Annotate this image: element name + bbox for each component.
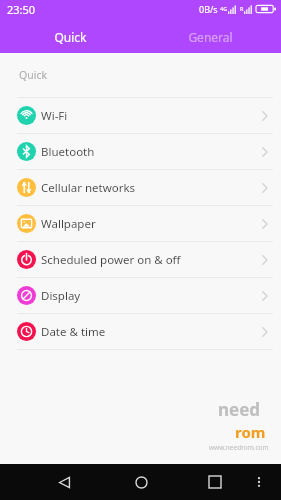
staticText: Date & time <box>41 324 106 340</box>
staticText: Cellular networks <box>41 180 136 196</box>
staticText: Quick <box>19 68 48 82</box>
button[interactable]: Cellular networks <box>0 170 281 205</box>
staticText: Display <box>41 288 81 304</box>
staticText: Wi-Fi <box>41 108 68 124</box>
staticText: www.needrom.com <box>209 443 269 452</box>
staticText: rom <box>235 422 266 442</box>
staticText: Wallpaper <box>41 216 96 232</box>
button[interactable]: Quick <box>0 20 140 53</box>
button[interactable]: General <box>140 20 281 53</box>
staticText: 0B/s <box>199 3 218 15</box>
button[interactable]: Recent apps <box>203 470 227 494</box>
button[interactable]: Date & time <box>0 314 281 349</box>
staticText: Quick <box>54 29 87 45</box>
button[interactable]: Wallpaper <box>0 206 281 241</box>
button[interactable]: Scheduled power on & off <box>0 242 281 277</box>
button[interactable]: Bluetooth <box>0 134 281 169</box>
staticText: R <box>240 5 244 12</box>
staticText: Scheduled power on & off <box>41 252 181 268</box>
staticText: 23:50 <box>7 2 36 17</box>
button[interactable]: Back <box>52 470 76 494</box>
staticText: need <box>218 398 261 421</box>
button[interactable]: Display <box>0 278 281 313</box>
staticText: General <box>188 29 233 45</box>
button[interactable]: Home <box>129 470 153 494</box>
button[interactable]: More options <box>249 472 269 492</box>
staticText: 4G <box>220 5 228 12</box>
button[interactable]: Wi-Fi <box>0 98 281 133</box>
staticText: Bluetooth <box>41 144 95 160</box>
